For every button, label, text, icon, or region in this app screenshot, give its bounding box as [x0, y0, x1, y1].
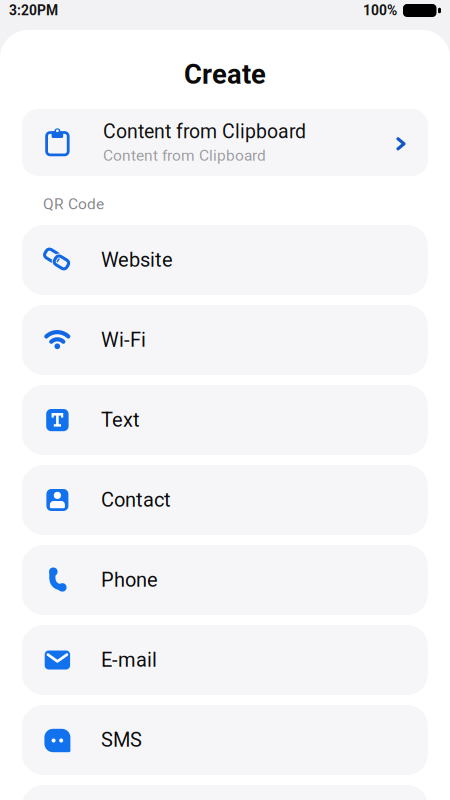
- button[interactable]: Text: [22, 385, 428, 455]
- button[interactable]: Contact: [22, 465, 428, 535]
- staticText: SMS: [101, 728, 142, 752]
- staticText: Content from Clipboard: [103, 146, 266, 164]
- staticText: Text: [101, 408, 140, 432]
- staticText: Phone: [101, 568, 158, 592]
- button[interactable]: Website: [22, 225, 428, 295]
- button[interactable]: E-mail: [22, 625, 428, 695]
- button[interactable]: Phone: [22, 545, 428, 615]
- button[interactable]: Content from Clipboard: [22, 109, 428, 176]
- button[interactable]: Wi-Fi: [22, 305, 428, 375]
- button[interactable]: SMS: [22, 705, 428, 775]
- staticText: 3:20PM: [9, 2, 58, 19]
- staticText: E-mail: [101, 648, 157, 672]
- staticText: Content from Clipboard: [103, 120, 306, 143]
- staticText: 100%: [363, 2, 397, 19]
- staticText: Website: [101, 248, 173, 272]
- staticText: QR Code: [43, 195, 104, 213]
- staticText: Wi-Fi: [101, 328, 146, 352]
- staticText: Contact: [101, 488, 171, 512]
- staticText: Create: [184, 58, 266, 90]
